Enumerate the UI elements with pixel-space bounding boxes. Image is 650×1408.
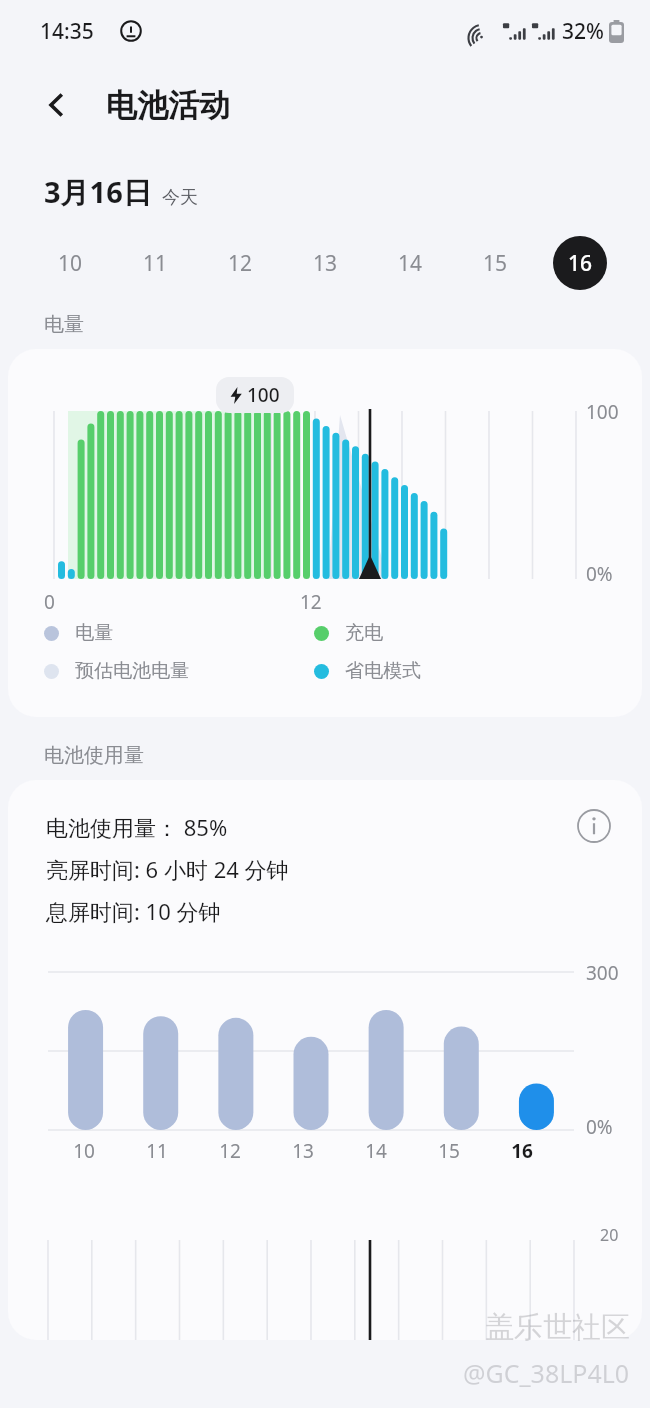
button[interactable]: Info bbox=[570, 802, 618, 850]
button[interactable]: 10 bbox=[48, 1138, 120, 1164]
button[interactable]: 10 bbox=[28, 232, 112, 294]
button[interactable]: 15 bbox=[412, 1138, 485, 1164]
staticText: 10 bbox=[58, 249, 83, 278]
staticText: 14 bbox=[398, 249, 423, 278]
staticText: 13 bbox=[313, 249, 338, 278]
staticText: 11 bbox=[143, 249, 168, 278]
staticText: 100 bbox=[586, 399, 619, 425]
staticText: 3月16日 bbox=[44, 172, 152, 212]
button[interactable]: 14 bbox=[339, 1138, 412, 1164]
staticText: 12 bbox=[228, 249, 253, 278]
staticText: 省电模式 bbox=[345, 659, 421, 683]
staticText: 12 bbox=[300, 589, 322, 615]
staticText: 亮屏时间: 6 小时 24 分钟 bbox=[46, 854, 289, 884]
staticText: 15 bbox=[438, 1138, 460, 1164]
button[interactable]: 15 bbox=[452, 232, 537, 294]
button[interactable]: 11 bbox=[112, 232, 197, 294]
staticText: 100 bbox=[247, 382, 280, 408]
staticText: 今天 bbox=[162, 186, 198, 209]
staticText: 电池使用量： 85% bbox=[46, 812, 228, 842]
staticText: 电量 bbox=[75, 621, 113, 645]
staticText: 0% bbox=[586, 1114, 613, 1140]
staticText: 预估电池电量 bbox=[75, 659, 189, 683]
staticText: 14:35 bbox=[40, 17, 94, 46]
staticText: 16 bbox=[568, 249, 593, 278]
staticText: 32% bbox=[562, 17, 604, 46]
button[interactable]: 11 bbox=[120, 1138, 193, 1164]
staticText: 20 bbox=[600, 1224, 619, 1246]
staticText: 14 bbox=[365, 1138, 387, 1164]
button[interactable]: 12 bbox=[193, 1138, 266, 1164]
button[interactable]: 14 bbox=[367, 232, 452, 294]
staticText: 15 bbox=[483, 249, 508, 278]
button[interactable]: 12 bbox=[197, 232, 282, 294]
staticText: 10 bbox=[73, 1138, 95, 1164]
staticText: @GC_38LP4L0 bbox=[463, 1356, 630, 1390]
staticText: 息屏时间: 10 分钟 bbox=[46, 896, 221, 926]
staticText: 电池使用量 bbox=[44, 743, 144, 768]
staticText: 12 bbox=[219, 1138, 241, 1164]
button[interactable]: 13 bbox=[282, 232, 367, 294]
button[interactable]: 13 bbox=[266, 1138, 339, 1164]
staticText: 16 bbox=[511, 1138, 533, 1164]
staticText: 0% bbox=[586, 561, 613, 587]
staticText: 电量 bbox=[44, 312, 84, 337]
button[interactable]: 16 bbox=[537, 232, 622, 294]
button[interactable]: Back bbox=[30, 78, 84, 132]
staticText: 充电 bbox=[345, 621, 383, 645]
button[interactable]: 100 bbox=[8, 349, 642, 717]
staticText: 盖乐世社区 bbox=[485, 1309, 630, 1346]
staticText: 300 bbox=[586, 960, 619, 986]
staticText: 13 bbox=[292, 1138, 314, 1164]
staticText: 11 bbox=[146, 1138, 168, 1164]
staticText: 电池活动 bbox=[106, 86, 230, 125]
button[interactable]: 16 bbox=[485, 1138, 558, 1164]
staticText: 0 bbox=[44, 589, 55, 615]
